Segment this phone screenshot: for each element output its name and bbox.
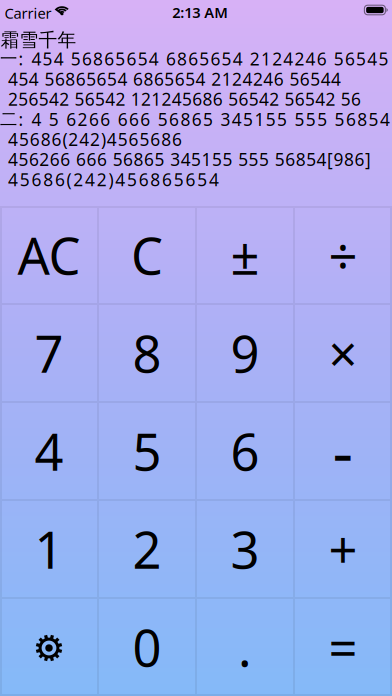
staticText: 8 xyxy=(357,108,367,131)
button[interactable]: + xyxy=(294,500,392,598)
staticText: 5 xyxy=(306,148,316,171)
staticText: 2 xyxy=(250,47,260,70)
staticText: 6 xyxy=(185,168,195,191)
staticText: 一 xyxy=(0,48,17,69)
staticText: 6 xyxy=(230,417,259,485)
staticText: 6 xyxy=(55,168,65,191)
button[interactable]: C xyxy=(98,206,196,304)
staticText: 6 xyxy=(140,108,150,131)
button[interactable]: 1 xyxy=(0,500,98,598)
staticText: 5 xyxy=(306,108,316,131)
staticText: 6 xyxy=(104,47,114,70)
staticText: 5 xyxy=(95,87,105,110)
staticText: 6 xyxy=(144,148,154,171)
staticText: : xyxy=(18,47,23,70)
staticText: 4 xyxy=(259,87,269,110)
staticText: [ xyxy=(327,148,333,171)
staticText: 1 xyxy=(131,87,141,110)
button[interactable]: 9 xyxy=(196,304,294,402)
button[interactable]: 5 xyxy=(98,402,196,500)
staticText: AC xyxy=(17,221,80,289)
button[interactable]: 3 xyxy=(196,500,294,598)
staticText: 4 xyxy=(31,108,41,131)
staticText: 5 xyxy=(164,67,174,90)
staticText: 2 xyxy=(115,87,125,110)
staticText: 6 xyxy=(169,108,179,131)
staticText: 6 xyxy=(50,148,60,171)
staticText: 5 xyxy=(19,128,29,151)
staticText: 5 xyxy=(289,67,299,90)
staticText: 8 xyxy=(93,47,103,70)
staticText: 4 xyxy=(172,87,182,110)
staticText: 1 xyxy=(201,148,211,171)
staticText: 2 xyxy=(8,87,18,110)
staticText: 1 xyxy=(261,47,271,70)
staticText: 5 xyxy=(86,67,96,90)
staticText: 5 xyxy=(113,148,123,171)
staticText: 2 xyxy=(232,67,242,90)
staticText: 8 xyxy=(296,148,306,171)
staticText: 1 xyxy=(254,108,264,131)
staticText: 2 xyxy=(211,67,221,90)
staticText: 8 xyxy=(177,47,187,70)
button[interactable]: ± xyxy=(196,206,294,304)
button[interactable]: 8 xyxy=(98,304,196,402)
staticText: 5 xyxy=(197,168,207,191)
staticText: 5 xyxy=(127,168,137,191)
staticText: - xyxy=(332,408,353,493)
button[interactable]: 4 xyxy=(0,402,98,500)
staticText: 6 xyxy=(118,108,128,131)
staticText: 0 xyxy=(132,613,161,681)
staticText: 4 xyxy=(79,128,89,151)
staticText: 6 xyxy=(89,108,99,131)
button[interactable]: - xyxy=(294,402,392,500)
staticText: 4 xyxy=(321,67,331,90)
button[interactable]: 6 xyxy=(196,402,294,500)
staticText: 6 xyxy=(172,128,182,151)
staticText: 二 xyxy=(0,108,17,130)
staticText: 5 xyxy=(71,47,81,70)
staticText: 5 xyxy=(74,87,84,110)
button[interactable]: 0 xyxy=(98,598,196,696)
staticText: 5 xyxy=(266,108,276,131)
staticText: 6 xyxy=(285,148,295,171)
staticText: 2 xyxy=(78,108,88,131)
staticText: 2 xyxy=(272,47,282,70)
staticText: 4 xyxy=(242,67,252,90)
staticText: 8 xyxy=(161,128,171,151)
staticText: 5 xyxy=(174,168,184,191)
staticText: 3 xyxy=(230,515,259,583)
staticText: 5 xyxy=(284,87,294,110)
staticText: 4 xyxy=(8,128,18,151)
button[interactable] xyxy=(0,598,98,696)
button[interactable]: ÷ xyxy=(294,206,392,304)
staticText: 5 xyxy=(132,417,161,485)
staticText: 4 xyxy=(233,47,243,70)
button[interactable]: 7 xyxy=(0,304,98,402)
staticText: 2 xyxy=(59,87,69,110)
button[interactable]: = xyxy=(294,598,392,696)
staticText: 6 xyxy=(210,47,220,70)
staticText: 8 xyxy=(133,148,143,171)
button[interactable]: × xyxy=(294,304,392,402)
staticText: 6 xyxy=(126,47,136,70)
staticText: ) xyxy=(108,168,113,191)
staticText: 6 xyxy=(28,87,38,110)
staticText: 6 xyxy=(188,47,198,70)
staticText: 3 xyxy=(220,108,230,131)
staticText: 6 xyxy=(97,67,107,90)
staticText: 4 xyxy=(209,168,219,191)
staticText: 5 xyxy=(182,87,192,110)
staticText: 2 xyxy=(325,87,335,110)
button[interactable]: 2 xyxy=(98,500,196,598)
staticText: 6 xyxy=(76,67,86,90)
staticText: ÷ xyxy=(328,221,357,289)
staticText: . xyxy=(238,613,252,681)
staticText: 5 xyxy=(222,148,232,171)
staticText: 6 xyxy=(76,148,86,171)
staticText: 2 xyxy=(97,168,107,191)
button[interactable]: . xyxy=(196,598,294,696)
button[interactable]: AC xyxy=(0,206,98,304)
staticText: 4 xyxy=(8,168,18,191)
staticText: 6 xyxy=(351,87,361,110)
